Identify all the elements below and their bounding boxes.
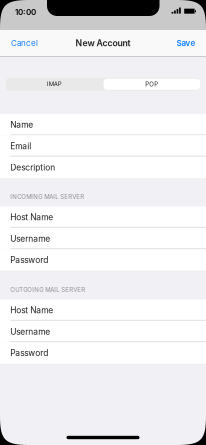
- staticText: New Account: [75, 38, 130, 48]
- staticText: IMAP: [47, 81, 62, 88]
- button[interactable]: Email: [0, 135, 206, 157]
- staticText: Name: [10, 120, 33, 130]
- button[interactable]: Host Name: [0, 206, 206, 228]
- staticText: 10:00: [15, 7, 36, 17]
- staticText: Host Name: [10, 212, 53, 222]
- button[interactable]: Password: [0, 342, 206, 364]
- staticText: Save: [176, 38, 195, 48]
- staticText: Host Name: [10, 305, 53, 315]
- button[interactable]: Username: [0, 228, 206, 249]
- button[interactable]: IMAP: [6, 78, 103, 91]
- staticText: Password: [10, 255, 48, 265]
- staticText: Username: [10, 233, 50, 244]
- button[interactable]: Host Name: [0, 299, 206, 321]
- staticText: INCOMING MAIL SERVER: [10, 193, 84, 200]
- button[interactable]: Description: [0, 157, 206, 178]
- button[interactable]: POP: [6, 78, 103, 89]
- staticText: Email: [10, 141, 31, 151]
- button[interactable]: Password: [0, 249, 206, 271]
- button[interactable]: Cancel: [0, 30, 44, 56]
- button[interactable]: Username: [0, 321, 206, 342]
- staticText: Description: [10, 162, 55, 173]
- staticText: Username: [10, 326, 50, 337]
- staticText: OUTGOING MAIL SERVER: [10, 286, 85, 293]
- staticText: Password: [10, 348, 48, 358]
- button[interactable]: Save: [0, 30, 44, 56]
- button[interactable]: Name: [0, 114, 206, 135]
- staticText: POP: [145, 81, 158, 88]
- staticText: Cancel: [11, 38, 38, 48]
